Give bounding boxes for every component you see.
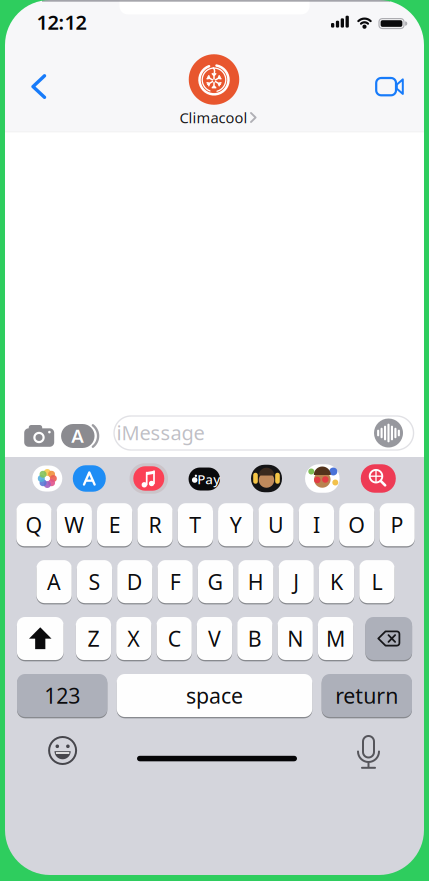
button[interactable]: space xyxy=(117,673,312,718)
button[interactable]: Dictation xyxy=(352,735,384,769)
button[interactable]: T xyxy=(178,502,213,547)
staticText: T xyxy=(189,510,201,539)
staticText: Pay xyxy=(197,470,220,488)
button[interactable]: Q xyxy=(16,502,52,547)
button[interactable]: Z xyxy=(76,616,111,661)
staticText: E xyxy=(109,510,121,539)
button[interactable]: O xyxy=(339,502,374,547)
button[interactable]: D xyxy=(117,559,152,604)
button[interactable]: return xyxy=(322,673,412,718)
button[interactable]: V xyxy=(197,616,232,661)
staticText: K xyxy=(330,567,343,596)
staticText: H xyxy=(248,567,264,596)
staticText: S xyxy=(88,567,100,596)
button[interactable]: N xyxy=(278,616,313,661)
button[interactable]: B xyxy=(237,616,272,661)
button[interactable]: Shift xyxy=(17,616,64,661)
staticText: 12:12 xyxy=(36,9,86,35)
staticText: G xyxy=(207,567,223,596)
button[interactable]: Conversation details xyxy=(169,108,259,126)
button[interactable]: iMessage apps xyxy=(61,424,94,448)
button[interactable]: E xyxy=(97,502,132,547)
button[interactable]: R xyxy=(137,502,173,547)
staticText: M xyxy=(326,624,345,653)
button[interactable]: L xyxy=(359,559,395,604)
staticText: R xyxy=(148,510,161,539)
button[interactable]: M xyxy=(318,616,353,661)
staticText: A xyxy=(71,423,84,448)
staticText: Climacool xyxy=(179,108,247,127)
staticText: Z xyxy=(87,624,99,653)
staticText: U xyxy=(268,510,284,539)
button[interactable]: App Store xyxy=(73,465,106,492)
staticText: J xyxy=(293,567,299,596)
button[interactable]: F xyxy=(157,559,193,604)
staticText: C xyxy=(168,624,181,653)
staticText: return xyxy=(335,681,398,710)
button[interactable]: U xyxy=(258,502,294,547)
staticText: O xyxy=(348,510,365,539)
button[interactable]: Apple Pay xyxy=(189,467,220,490)
button[interactable]: W xyxy=(57,502,92,547)
button[interactable]: Music xyxy=(130,463,168,494)
staticText: D xyxy=(127,567,143,596)
button[interactable]: I xyxy=(299,502,334,547)
button[interactable]: iMessage text field xyxy=(114,416,414,450)
button[interactable]: S xyxy=(77,559,112,604)
button[interactable]: X xyxy=(116,616,151,661)
staticText: W xyxy=(64,510,84,539)
button[interactable]: Delete xyxy=(365,616,412,661)
button[interactable]: Search images xyxy=(361,464,396,493)
staticText: F xyxy=(170,567,181,596)
staticText: Q xyxy=(25,510,42,539)
button[interactable]: Stickers xyxy=(305,464,340,493)
button[interactable]: 123 xyxy=(17,673,107,718)
button[interactable]: P xyxy=(379,502,415,547)
staticText: I xyxy=(313,510,320,539)
button[interactable]: H xyxy=(238,559,273,604)
button[interactable]: J xyxy=(279,559,314,604)
staticText: A xyxy=(47,567,61,596)
button[interactable]: Dictate message xyxy=(374,418,403,447)
staticText: P xyxy=(391,510,404,539)
button[interactable]: Photos xyxy=(32,465,62,491)
button[interactable]: G xyxy=(198,559,233,604)
button[interactable]: Emoji xyxy=(48,736,77,765)
button[interactable]: FaceTime xyxy=(375,77,404,97)
staticText: X xyxy=(127,624,140,653)
staticText: Y xyxy=(230,510,242,539)
button[interactable]: C xyxy=(156,616,192,661)
button[interactable]: Memoji stickers xyxy=(251,465,282,492)
button[interactable]: K xyxy=(319,559,354,604)
staticText: space xyxy=(186,681,243,710)
staticText: iMessage xyxy=(117,419,205,446)
staticText: N xyxy=(287,624,303,653)
button[interactable]: Y xyxy=(218,502,253,547)
button[interactable]: Camera xyxy=(24,423,54,447)
button[interactable]: Climacool contact xyxy=(189,54,239,105)
staticText: L xyxy=(371,567,382,596)
staticText: V xyxy=(208,624,221,653)
button[interactable]: Back xyxy=(19,71,59,101)
button[interactable]: A xyxy=(36,559,72,604)
staticText: B xyxy=(248,624,262,653)
staticText: 123 xyxy=(44,681,80,710)
